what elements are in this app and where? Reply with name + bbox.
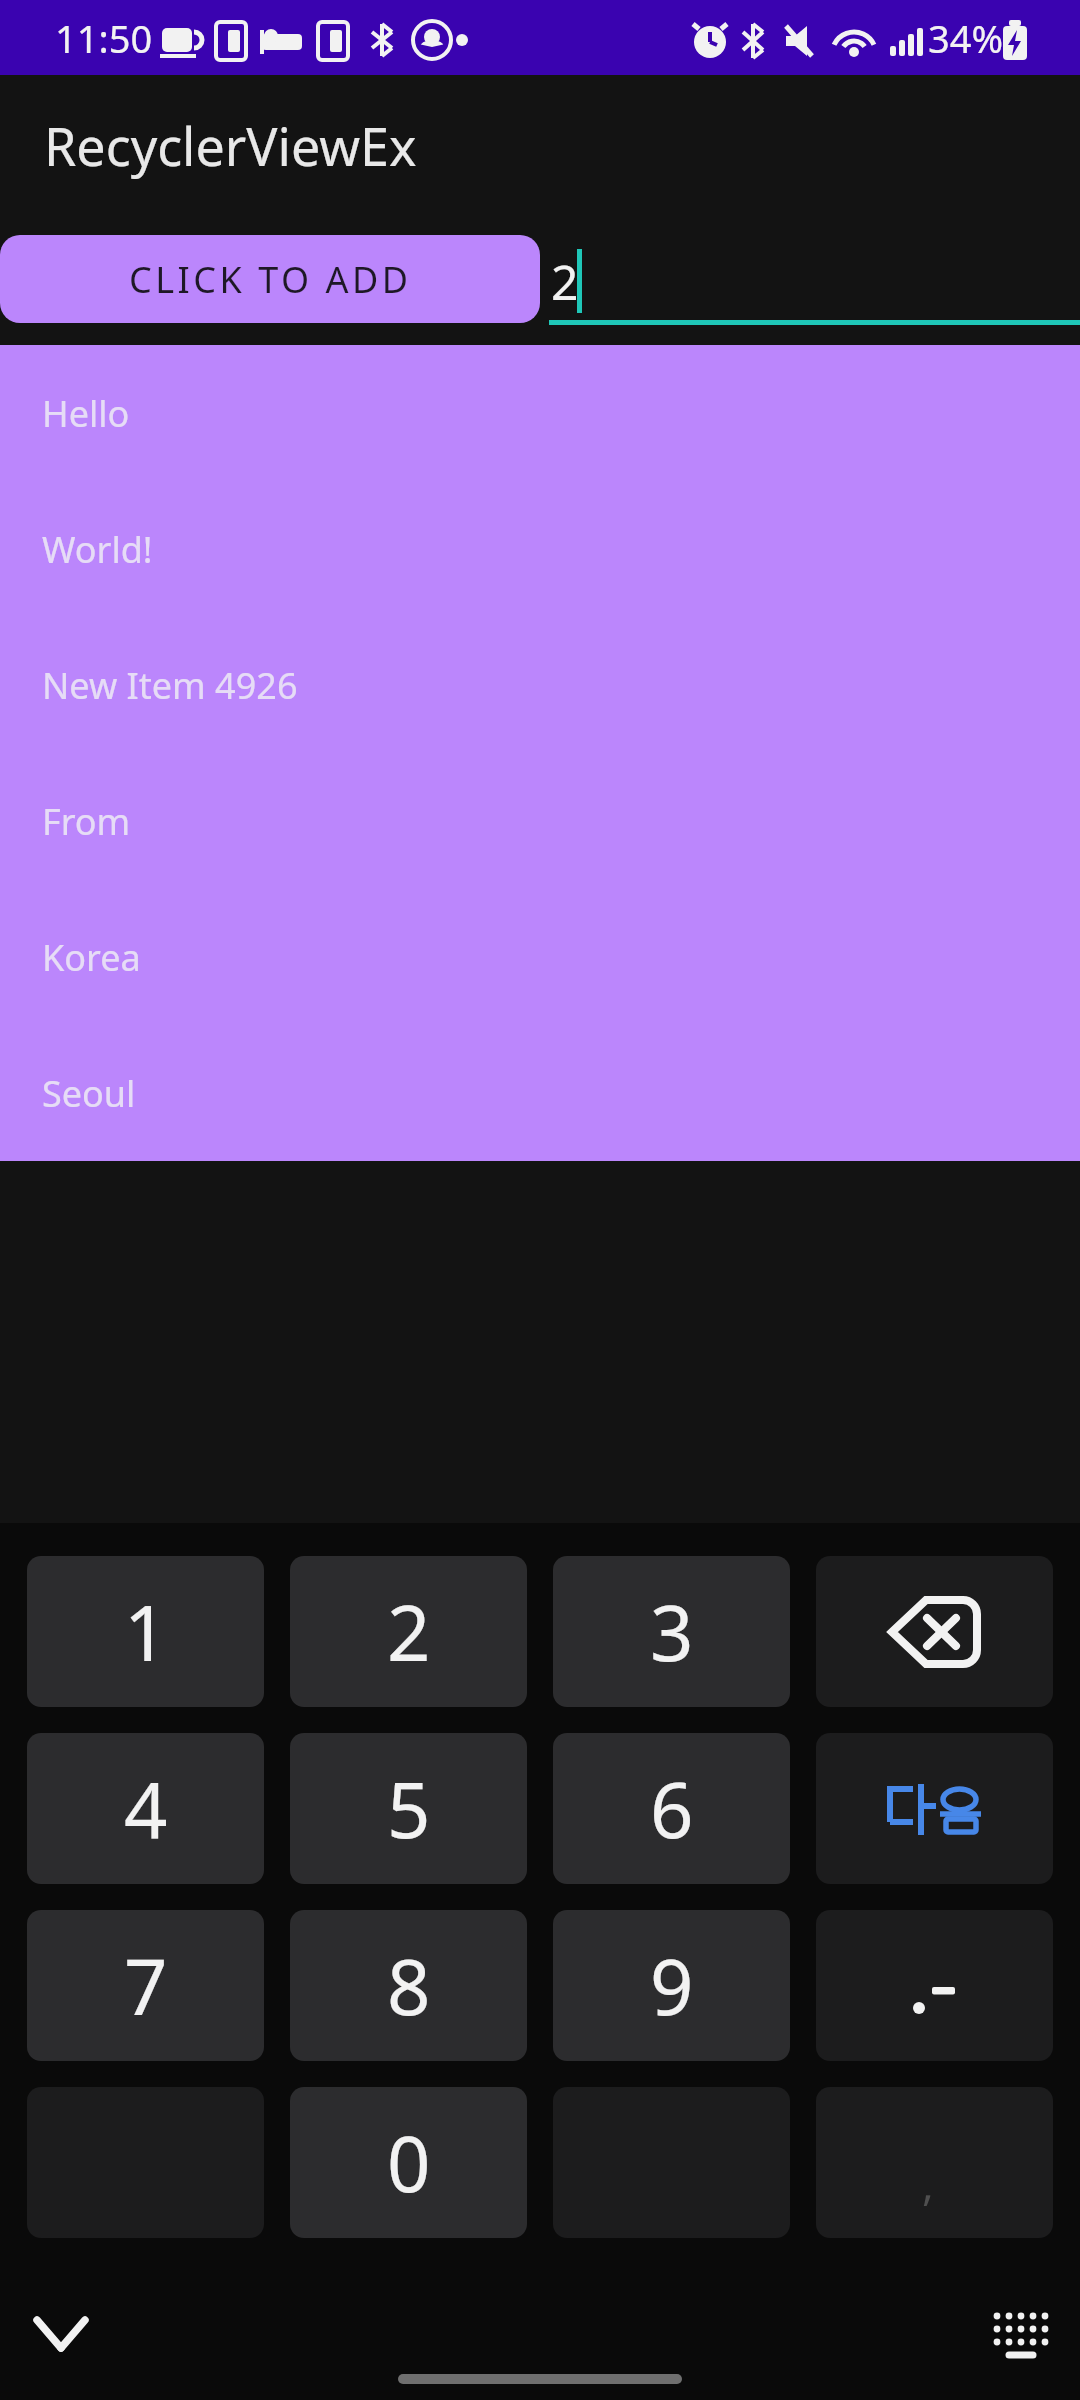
staticText: RecyclerViewEx [44,110,417,181]
button[interactable]: Seoul [0,1025,1080,1161]
staticText: 2 [551,249,579,314]
button[interactable]: 2 [549,233,1080,325]
button[interactable] [816,1733,1053,1884]
button[interactable]: New Item 4926 [0,617,1080,753]
staticText: 2 [387,1580,431,1684]
button[interactable]: 4 [27,1733,264,1884]
button[interactable] [816,1556,1053,1707]
staticText: 0 [387,2111,431,2215]
staticText: 6 [650,1757,694,1861]
staticText: From [42,797,131,846]
staticText: 9 [650,1934,694,2038]
staticText: 11:50 [55,12,153,64]
button[interactable]: 0 [290,2087,527,2238]
button[interactable]: 5 [290,1733,527,1884]
staticText: CLICK TO ADD [129,255,412,304]
staticText: 5 [387,1757,431,1861]
button[interactable]: From [0,753,1080,889]
staticText: 1 [124,1580,168,1684]
button[interactable]: 9 [553,1910,790,2061]
button[interactable]: 1 [27,1556,264,1707]
button[interactable] [985,2303,1055,2363]
staticText: 7 [124,1934,168,2038]
button[interactable]: Korea [0,889,1080,1025]
staticText: Seoul [42,1069,136,1118]
staticText: Korea [42,933,141,982]
staticText: , [922,2153,934,2213]
staticText: 8 [387,1934,431,2038]
staticText: 3 [650,1580,694,1684]
button[interactable]: World! [0,481,1080,617]
button[interactable]: 6 [553,1733,790,1884]
staticText: New Item 4926 [42,661,298,710]
button[interactable]: 3 [553,1556,790,1707]
button[interactable]: 8 [290,1910,527,2061]
button[interactable]: Hello [0,345,1080,481]
button[interactable] [28,2313,96,2363]
button[interactable]: CLICK TO ADD [0,235,540,323]
staticText: World! [42,525,153,574]
button[interactable]: 7 [27,1910,264,2061]
button[interactable] [816,1910,1053,2061]
staticText: 34% [928,12,1004,64]
staticText: 4 [124,1757,168,1861]
button[interactable]: 2 [290,1556,527,1707]
staticText: Hello [42,389,130,438]
